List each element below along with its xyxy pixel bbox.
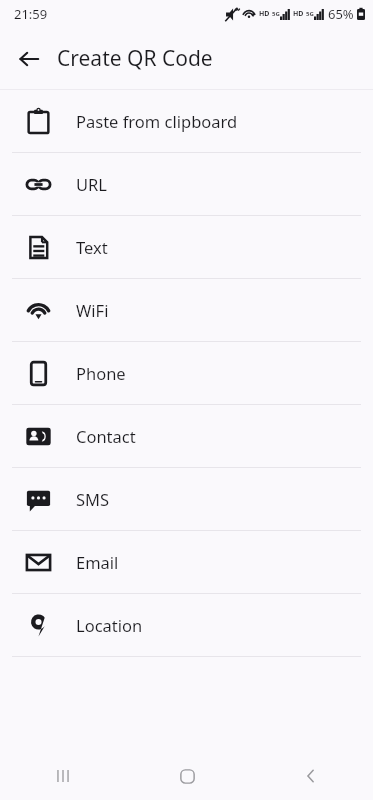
button[interactable]: URL: [0, 153, 373, 215]
staticText: Text: [76, 236, 108, 258]
staticText: 5G: [272, 10, 280, 18]
staticText: Paste from clipboard: [76, 110, 238, 132]
staticText: Contact: [76, 425, 136, 447]
button[interactable]: Location: [0, 594, 373, 656]
button[interactable]: Back: [8, 38, 50, 80]
staticText: 5G: [306, 10, 314, 18]
staticText: Email: [76, 551, 119, 573]
button[interactable]: Recent apps: [0, 752, 125, 800]
button[interactable]: WiFi: [0, 279, 373, 341]
button[interactable]: Contact: [0, 405, 373, 467]
staticText: SMS: [76, 488, 110, 510]
button[interactable]: Email: [0, 531, 373, 593]
staticText: URL: [76, 173, 107, 195]
staticText: 21:59: [14, 5, 48, 23]
button[interactable]: SMS: [0, 468, 373, 530]
staticText: Location: [76, 614, 143, 636]
button[interactable]: Text: [0, 216, 373, 278]
staticText: HD: [259, 9, 270, 19]
button[interactable]: Home: [125, 752, 249, 800]
staticText: WiFi: [76, 299, 109, 321]
staticText: HD: [293, 9, 304, 19]
button[interactable]: Paste from clipboard: [0, 90, 373, 152]
button[interactable]: Phone: [0, 342, 373, 404]
button[interactable]: Back: [249, 752, 373, 800]
staticText: Phone: [76, 362, 126, 384]
staticText: Create QR Code: [57, 44, 213, 73]
staticText: 65%: [328, 5, 354, 23]
